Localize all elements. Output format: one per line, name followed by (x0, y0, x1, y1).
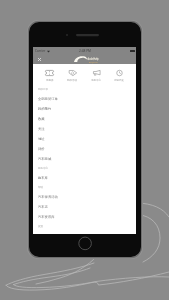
staticText: 评价 (38, 147, 45, 151)
button[interactable]: 汽车店 (33, 202, 136, 212)
button[interactable]: 汽车资讯库 (33, 212, 136, 222)
button[interactable]: 汽车商城 (33, 154, 136, 164)
staticText: 汽车保养活动 (38, 195, 58, 199)
button[interactable]: Close (36, 56, 43, 63)
staticText: 关注 (38, 127, 45, 131)
staticText: 收藏 (38, 117, 45, 121)
button[interactable]: 关注 (33, 124, 136, 134)
staticText: 我的活动 (67, 79, 77, 82)
staticText: 消息中心 (91, 79, 101, 82)
staticText: 汽车店 (38, 205, 48, 209)
button[interactable]: 我的预约 (33, 104, 136, 114)
staticText: 购车库 (38, 176, 48, 180)
staticText: 优惠券 (46, 79, 54, 82)
button[interactable]: 评价 (33, 144, 136, 154)
button[interactable]: 浏览历史 (113, 64, 125, 82)
button[interactable]: 优惠券 (44, 64, 55, 82)
staticText: 浏览历史 (114, 79, 124, 82)
button[interactable]: 地址 (33, 134, 136, 144)
staticText: 服务中心 (38, 167, 48, 170)
staticText: 汽车资讯库 (38, 215, 55, 219)
staticText: 2:48 PM (79, 49, 91, 53)
button[interactable]: 全部商品订单 (33, 94, 136, 104)
button[interactable]: 汽车保养活动 (33, 192, 136, 202)
button[interactable]: 我的活动 (66, 64, 78, 82)
staticText: 北京汽车 (87, 57, 99, 61)
staticText: 我的订单 (38, 88, 48, 91)
staticText: 地址 (38, 137, 45, 141)
staticText: 我的预约 (38, 107, 52, 111)
button[interactable]: 收藏 (33, 114, 136, 124)
button[interactable]: 消息中心 (90, 64, 102, 82)
staticText: 设置 (38, 225, 43, 228)
staticText: 全部商品订单 (38, 97, 58, 101)
staticText: 帮助 (38, 186, 43, 189)
button[interactable]: 购车库 (33, 173, 136, 183)
staticText: 汽车商城 (38, 157, 52, 161)
staticText: B E I J I N G (89, 61, 98, 63)
staticText: Carrier (35, 49, 46, 53)
